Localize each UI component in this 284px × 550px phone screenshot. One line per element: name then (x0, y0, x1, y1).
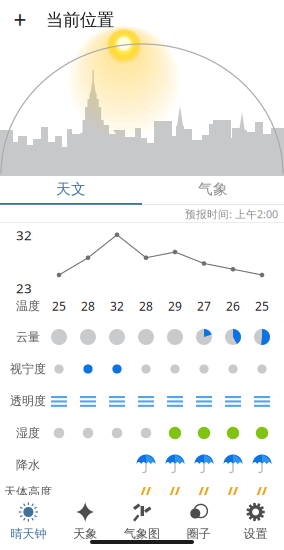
staticText: 气象 (198, 180, 228, 198)
staticText: 湿度 (16, 426, 40, 440)
staticText: 28 (81, 298, 95, 314)
staticText: 圈子 (187, 526, 211, 541)
button[interactable]: 圈子 (170, 498, 227, 544)
staticText: 预报时间: 上午2:00 (185, 207, 278, 221)
button[interactable]: 天文 (0, 172, 142, 205)
button[interactable]: 气象图 (114, 498, 170, 544)
staticText: 视宁度 (10, 362, 46, 376)
staticText: 天文 (56, 180, 86, 198)
button[interactable]: 气象 (142, 172, 284, 205)
staticText: 32 (110, 298, 124, 314)
staticText: + (13, 5, 26, 35)
staticText: 透明度 (10, 394, 46, 408)
staticText: 25 (255, 298, 269, 314)
staticText: 23 (16, 279, 32, 297)
staticText: 降水 (16, 458, 40, 472)
button[interactable]: 天象 (57, 498, 114, 544)
staticText: 26 (226, 298, 240, 314)
button[interactable]: 设置 (227, 498, 284, 544)
staticText: 25 (52, 298, 66, 314)
staticText: 28 (139, 298, 153, 314)
staticText: 32 (16, 226, 32, 244)
staticText: 29 (168, 298, 182, 314)
staticText: 气象图 (124, 526, 160, 541)
staticText: 设置 (244, 526, 268, 541)
staticText: 晴天钟 (10, 526, 46, 541)
staticText: 温度 (16, 299, 40, 313)
staticText: 当前位置 (46, 9, 114, 31)
staticText: 云量 (16, 330, 40, 344)
button[interactable]: 晴天钟 (0, 498, 57, 544)
button[interactable]: Add location (0, 0, 40, 40)
staticText: 天象 (73, 526, 97, 541)
staticText: 天体高度 (4, 485, 52, 499)
staticText: 27 (197, 298, 211, 314)
button[interactable]: 当前位置 (46, 0, 136, 40)
